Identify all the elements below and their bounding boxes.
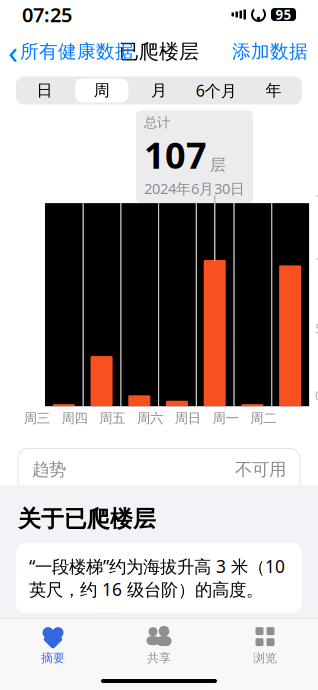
staticText: 50 — [315, 319, 318, 337]
staticText: 不可用 — [235, 459, 286, 480]
staticText: 150 — [315, 189, 318, 207]
button[interactable]: 日 — [16, 76, 73, 104]
staticText: 共享 — [147, 651, 171, 665]
staticText: 层 — [210, 155, 226, 175]
staticText: 摘要 — [41, 651, 65, 665]
staticText: 总计 — [144, 114, 170, 131]
staticText: 周六 — [137, 410, 163, 426]
staticText: 周五 — [99, 410, 125, 426]
button[interactable]: 月 — [130, 76, 188, 104]
staticText: 周四 — [62, 410, 88, 426]
button[interactable]: 年 — [245, 76, 302, 104]
button[interactable]: 添加数据 — [232, 34, 318, 69]
button[interactable]: ‹ — [0, 24, 134, 79]
staticText: 周三 — [24, 410, 50, 426]
button[interactable]: 6个月 — [188, 76, 245, 104]
staticText: 日 — [37, 81, 53, 100]
staticText: 年 — [265, 81, 281, 100]
staticText: 95 — [275, 6, 291, 23]
staticText: 周一 — [212, 410, 238, 426]
staticText: 周日 — [175, 410, 201, 426]
staticText: 周二 — [250, 410, 276, 426]
staticText: “一段楼梯”约为海拔升高 3 米（10 英尺，约 16 级台阶）的高度。 — [29, 555, 285, 601]
staticText: 月 — [151, 81, 167, 100]
staticText: ‹ — [8, 30, 18, 73]
staticText: 2024年6月30日 — [144, 179, 245, 198]
staticText: 07:25 — [22, 1, 72, 28]
staticText: 浏览 — [253, 651, 277, 665]
staticText: 100 — [315, 252, 318, 270]
staticText: 添加数据 — [232, 40, 308, 63]
button[interactable]: 摘要 — [0, 620, 106, 665]
staticText: 6个月 — [196, 80, 237, 101]
staticText: 107 — [144, 131, 207, 179]
staticText: 周 — [94, 81, 110, 100]
button[interactable]: 周 — [73, 76, 130, 104]
staticText: 趋势 — [32, 459, 66, 480]
staticText: 关于已爬楼层 — [18, 505, 156, 533]
button[interactable]: 共享 — [106, 620, 212, 665]
staticText: 已爬楼层 — [119, 39, 199, 64]
staticText: 所有健康数据 — [20, 40, 134, 63]
button[interactable]: 浏览 — [212, 620, 318, 665]
staticText: 0 — [315, 386, 318, 404]
